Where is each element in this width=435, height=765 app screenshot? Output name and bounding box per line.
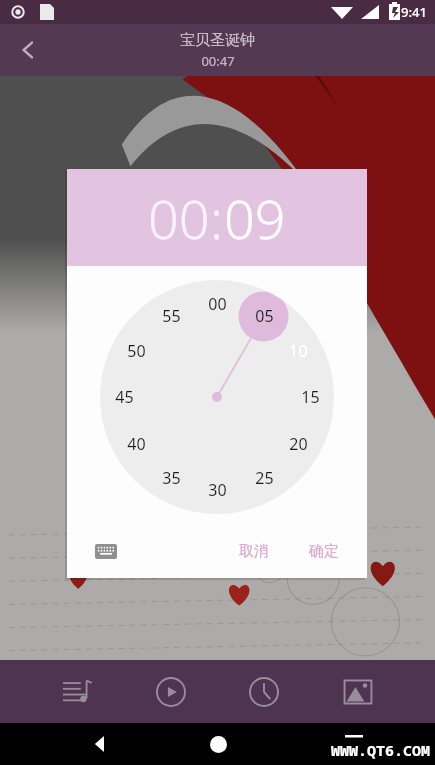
button[interactable]: Timer: [238, 666, 290, 718]
button[interactable]: Home: [198, 724, 238, 764]
staticText: 15: [301, 386, 320, 408]
staticText: 取消: [239, 542, 269, 561]
staticText: 55: [162, 305, 181, 327]
staticText: 25: [255, 467, 274, 489]
button[interactable]: Keyboard input: [89, 534, 123, 568]
button[interactable]: Gallery: [332, 666, 384, 718]
staticText: :: [210, 181, 224, 255]
staticText: 确定: [309, 542, 339, 561]
button[interactable]: 00: [100, 280, 334, 514]
button[interactable]: 确定: [295, 534, 353, 569]
button[interactable]: Playlist: [51, 666, 103, 718]
staticText: 9:41: [401, 3, 427, 21]
staticText: 00: [208, 293, 227, 315]
button[interactable]: 00: [148, 181, 210, 255]
staticText: 35: [162, 467, 181, 489]
staticText: 50: [127, 340, 146, 362]
staticText: 宝贝圣诞钟: [180, 31, 255, 50]
button[interactable]: Back: [80, 724, 120, 764]
staticText: 00:47: [201, 52, 235, 70]
staticText: 20: [289, 433, 308, 455]
staticText: 40: [127, 433, 146, 455]
staticText: WWW.QT6.COM: [331, 740, 431, 760]
staticText: 05: [255, 305, 274, 327]
button[interactable]: 取消: [225, 534, 283, 569]
button[interactable]: Back: [6, 28, 50, 72]
staticText: 30: [208, 479, 227, 501]
button[interactable]: 09: [224, 181, 286, 255]
staticText: 45: [115, 386, 134, 408]
staticText: 10: [289, 340, 308, 362]
button[interactable]: Play: [145, 666, 197, 718]
